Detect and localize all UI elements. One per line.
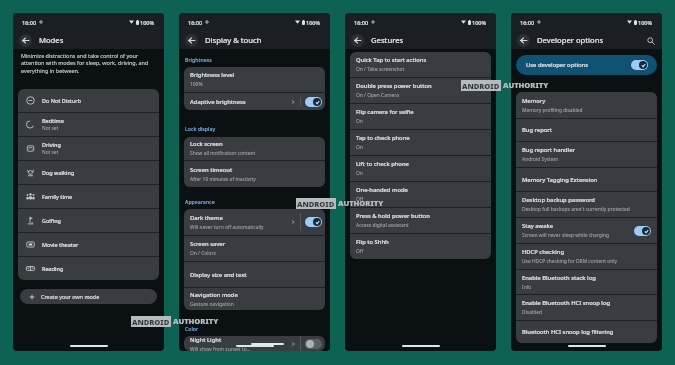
button[interactable]: Toggle xyxy=(305,339,322,349)
staticText: Screen timeout xyxy=(190,166,233,174)
button[interactable]: Create your own mode xyxy=(20,289,157,304)
button[interactable]: Adaptive brightness xyxy=(184,93,300,110)
staticText: ANDROID xyxy=(297,199,335,209)
button[interactable]: Memory xyxy=(516,92,657,118)
button[interactable]: HDCP checking xyxy=(516,244,657,269)
staticText: Not set xyxy=(42,149,59,156)
staticText: 100% xyxy=(190,81,203,88)
button[interactable]: Quick Tap to start actions xyxy=(350,52,491,77)
button[interactable]: Bug report handler xyxy=(516,142,657,167)
staticText: Gestures xyxy=(371,35,404,45)
staticText: Memory Tagging Extension xyxy=(522,176,598,184)
button[interactable]: Screen saver xyxy=(184,236,325,261)
button[interactable]: Press & hold power button xyxy=(350,208,491,233)
staticText: Flip camera for selfie xyxy=(356,108,414,116)
staticText: Brightness level xyxy=(190,71,235,79)
staticText: Desktop backup password xyxy=(522,196,595,204)
staticText: Stay awake xyxy=(522,222,554,230)
button[interactable]: Navigation mode xyxy=(184,288,325,310)
button[interactable]: Double press power button xyxy=(350,78,491,103)
staticText: AUTHORITY xyxy=(503,80,549,90)
staticText: AUTHORITY xyxy=(173,316,219,326)
staticText: Not set xyxy=(42,125,59,132)
button[interactable]: Night Light xyxy=(184,336,300,351)
staticText: Family time xyxy=(42,193,73,200)
staticText: Quick Tap to start actions xyxy=(356,56,427,64)
staticText: On / Open Camera xyxy=(356,92,399,99)
button[interactable]: Dark theme toggle xyxy=(301,209,325,235)
button[interactable]: Stay awake xyxy=(516,218,657,243)
button[interactable]: Enable Bluetooth stack log xyxy=(516,270,657,294)
staticText: Dog walking xyxy=(42,169,75,176)
staticText: Use HDCP checking for DRM content only xyxy=(522,258,618,265)
button[interactable]: Display size and text xyxy=(184,262,325,287)
button[interactable]: Toggle xyxy=(631,60,648,70)
staticText: Access digital assistant xyxy=(356,222,409,229)
staticText: Enable Bluetooth HCI snoop log xyxy=(522,299,611,307)
button[interactable]: Lift to check phone xyxy=(350,156,491,181)
staticText: On / Take screenshot xyxy=(356,66,405,73)
staticText: Desktop full backups aren't currently pr… xyxy=(522,206,630,213)
button[interactable]: Brightness level xyxy=(184,67,325,92)
button[interactable]: Night Light toggle xyxy=(301,336,325,351)
staticText: Bug report handler xyxy=(522,146,576,154)
staticText: Bug report xyxy=(522,126,552,134)
button[interactable]: Search xyxy=(645,35,656,46)
staticText: Modes xyxy=(39,35,64,45)
staticText: Show all notification content xyxy=(190,150,256,157)
button[interactable]: Back xyxy=(517,34,530,47)
staticText: 100% xyxy=(306,19,321,26)
button[interactable]: Family time xyxy=(18,185,159,208)
button[interactable]: Lock screen xyxy=(184,137,325,160)
staticText: Color xyxy=(185,325,199,332)
button[interactable]: Dog walking xyxy=(18,161,159,184)
staticText: Disabled xyxy=(522,309,542,316)
button[interactable]: Tap to check phone xyxy=(350,130,491,155)
button[interactable]: Toggle xyxy=(305,97,322,107)
button[interactable]: Movie theater xyxy=(18,233,159,256)
button[interactable]: Golfing xyxy=(18,209,159,232)
button[interactable]: Screen timeout xyxy=(184,161,325,187)
button[interactable]: Do Not Disturb xyxy=(18,89,159,112)
staticText: Dark theme xyxy=(190,214,223,222)
button[interactable]: Driving xyxy=(18,137,159,160)
button[interactable]: One-handed mode xyxy=(350,182,491,207)
button[interactable]: Desktop backup password xyxy=(516,192,657,217)
staticText: 100% xyxy=(638,19,653,26)
staticText: Memory xyxy=(522,97,546,105)
staticText: ANDROID xyxy=(132,317,170,327)
button[interactable]: Enable Bluetooth HCI snoop log xyxy=(516,295,657,320)
button[interactable]: Bluetooth HCI snoop log filtering xyxy=(516,321,657,343)
staticText: Gesture navigation xyxy=(190,301,234,308)
staticText: On xyxy=(356,170,363,177)
button[interactable]: Memory Tagging Extension xyxy=(516,168,657,191)
staticText: Use developer options xyxy=(526,61,589,69)
button[interactable]: Bedtime xyxy=(18,113,159,136)
button[interactable]: Reading xyxy=(18,257,159,280)
staticText: Reading xyxy=(42,265,64,272)
button[interactable]: Adaptive brightness toggle xyxy=(301,93,325,110)
staticText: Do Not Disturb xyxy=(42,97,81,104)
staticText: 100% xyxy=(140,19,155,26)
button[interactable]: Use developer options xyxy=(516,55,657,75)
staticText: AUTHORITY xyxy=(338,198,384,208)
button[interactable]: Back xyxy=(351,34,364,47)
button[interactable]: Back xyxy=(19,34,32,47)
staticText: Will show from sunset to sunrise xyxy=(190,346,251,351)
staticText: Will never turn off automatically xyxy=(190,224,264,231)
button[interactable]: Flip to Shhh xyxy=(350,234,491,259)
button[interactable]: Bug report xyxy=(516,119,657,141)
staticText: Memory profiling disabled xyxy=(522,107,583,114)
button[interactable]: Back xyxy=(185,34,198,47)
staticText: Brightness xyxy=(185,56,212,63)
button[interactable]: Flip camera for selfie xyxy=(350,104,491,129)
staticText: Bedtime xyxy=(42,117,64,124)
staticText: Navigation mode xyxy=(190,291,238,299)
button[interactable]: Toggle xyxy=(305,217,322,227)
button[interactable]: Toggle xyxy=(634,226,651,236)
staticText: Minimize distractions and take control o… xyxy=(21,52,154,75)
staticText: 16:00 xyxy=(520,19,535,26)
staticText: After 10 minutes of inactivity xyxy=(190,176,256,183)
button[interactable]: Dark theme xyxy=(184,209,300,235)
staticText: Create your own mode xyxy=(41,293,100,300)
